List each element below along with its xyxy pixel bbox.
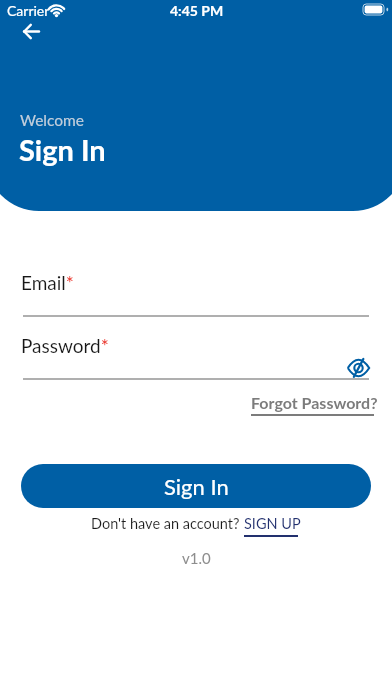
button[interactable]: Forgot Password? bbox=[251, 393, 378, 412]
staticText: Email* bbox=[21, 271, 74, 294]
button[interactable] bbox=[341, 355, 375, 381]
staticText: Sign In bbox=[164, 473, 229, 499]
staticText: Carrier bbox=[7, 2, 50, 19]
staticText: Don't have an account? bbox=[91, 515, 244, 532]
button[interactable] bbox=[15, 15, 47, 47]
staticText: v1.0 bbox=[182, 549, 211, 567]
staticText: Sign In bbox=[19, 132, 106, 167]
staticText: Forgot Password? bbox=[251, 393, 378, 412]
staticText: Welcome bbox=[20, 111, 84, 130]
button[interactable]: SIGN UP bbox=[244, 515, 301, 532]
button[interactable]: Sign In bbox=[21, 464, 371, 508]
staticText: Password* bbox=[21, 334, 109, 357]
staticText: 4:45 PM bbox=[170, 2, 224, 19]
staticText: SIGN UP bbox=[244, 515, 301, 532]
